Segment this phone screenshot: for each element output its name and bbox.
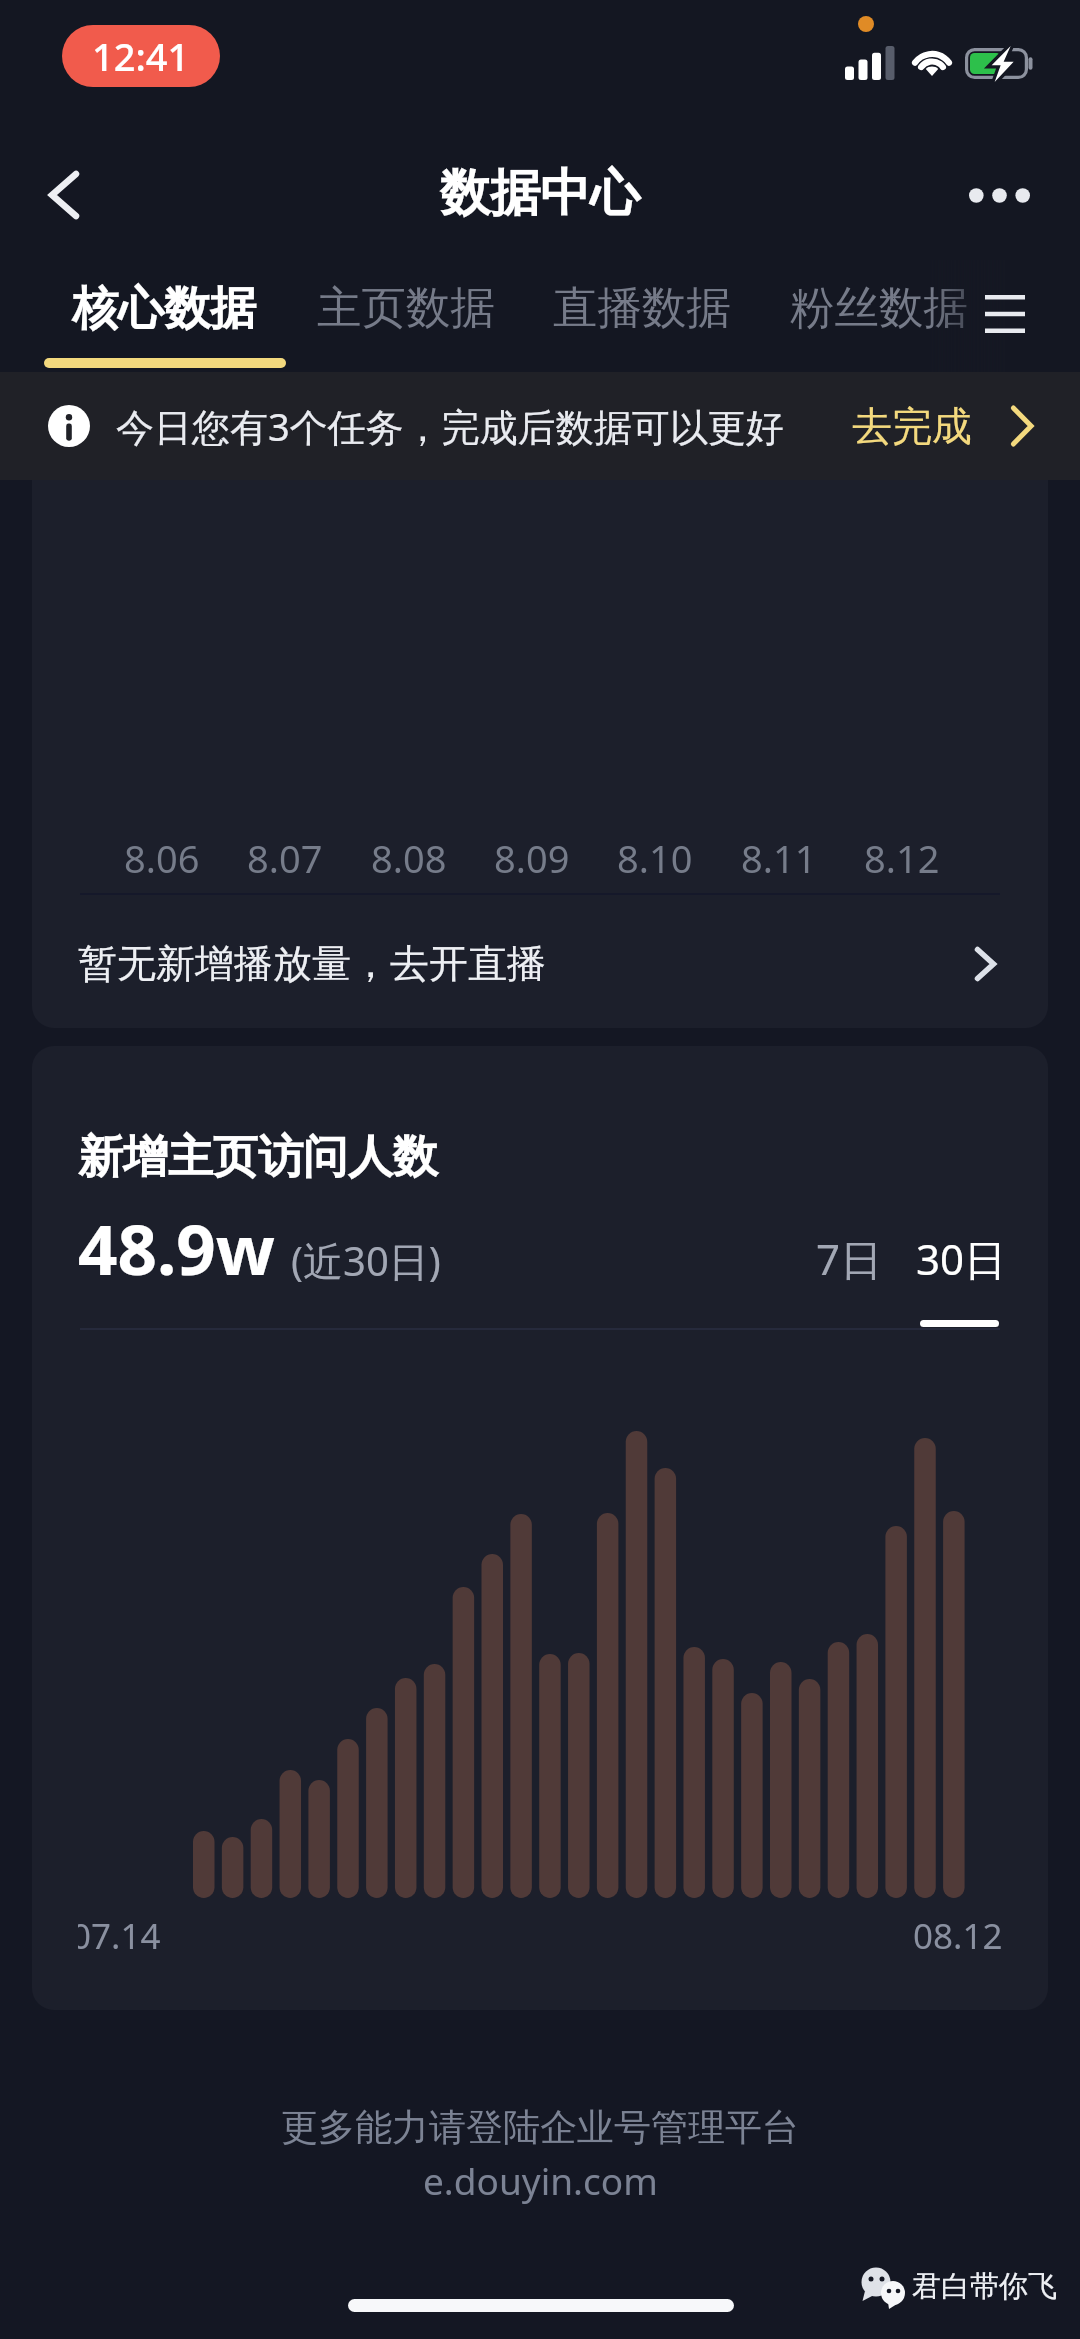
staticText: 粉丝数据 — [790, 280, 968, 336]
button[interactable]: 主页数据 — [317, 260, 495, 372]
staticText: 30日 — [916, 1230, 1007, 1287]
staticText: 去完成 — [852, 401, 972, 451]
staticText: 更多能力请登陆企业号管理平台 — [281, 2104, 799, 2151]
staticText: 8.07 — [247, 832, 323, 884]
staticText: 新增主页访问人数 — [78, 1129, 438, 1186]
staticText: 8.10 — [617, 832, 693, 884]
button[interactable]: 今日您有3个任务，完成后数据可以更好 — [0, 372, 1080, 480]
button[interactable]: 7日 — [794, 1230, 904, 1324]
staticText: 8.11 — [741, 832, 817, 884]
staticText: 08.12 — [913, 1912, 1003, 1960]
button[interactable]: All tabs — [965, 274, 1045, 354]
staticText: 暂无新增播放量，去开直播 — [78, 939, 546, 988]
staticText: 主页数据 — [317, 280, 495, 336]
button[interactable]: 直播数据 — [553, 260, 731, 372]
staticText: 7日 — [816, 1230, 883, 1287]
staticText: 8.12 — [864, 832, 940, 884]
staticText: 君白带你飞 — [912, 2268, 1057, 2305]
button[interactable]: More options — [949, 145, 1049, 245]
staticText: 07.14 — [78, 1912, 161, 1960]
staticText: (近30日) — [291, 1233, 441, 1288]
button[interactable]: 粉丝数据 — [790, 260, 968, 372]
staticText: 数据中心 — [440, 162, 640, 225]
staticText: 今日您有3个任务，完成后数据可以更好 — [116, 400, 784, 452]
button[interactable]: 核心数据 — [72, 260, 256, 372]
staticText: 核心数据 — [72, 280, 256, 338]
button[interactable]: 30日 — [895, 1230, 1027, 1324]
staticText: 8.09 — [494, 832, 570, 884]
staticText: 12:41 — [92, 30, 190, 82]
staticText: 8.06 — [124, 832, 200, 884]
staticText: e.douyin.com — [423, 2155, 658, 2205]
staticText: 8.08 — [371, 832, 447, 884]
staticText: 直播数据 — [553, 280, 731, 336]
button[interactable]: Back — [16, 147, 112, 243]
staticText: 48.9w — [78, 1201, 275, 1295]
button[interactable]: 暂无新增播放量，去开直播 — [32, 899, 1048, 1028]
